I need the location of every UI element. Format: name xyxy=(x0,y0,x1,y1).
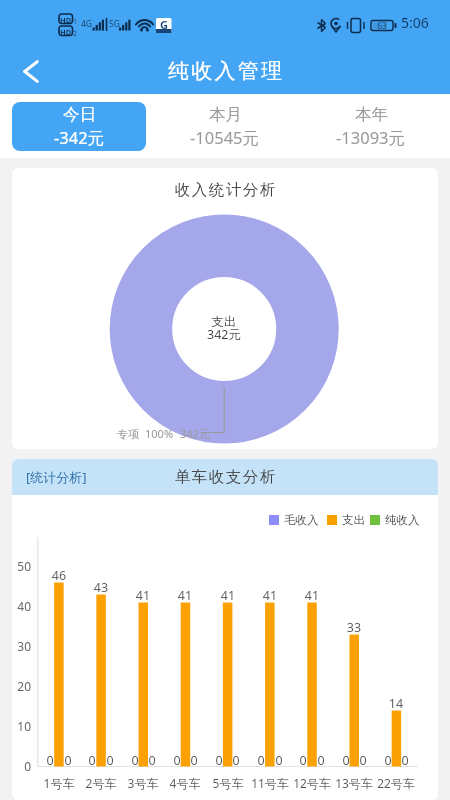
staticText: 342元 xyxy=(180,426,210,441)
staticText: -342元 xyxy=(54,126,105,149)
staticText: 0 xyxy=(85,752,135,769)
staticText: 0 xyxy=(152,752,202,769)
staticText: 33 xyxy=(329,619,379,636)
staticText: 0 xyxy=(338,752,388,769)
staticText: 10 xyxy=(12,718,31,734)
staticText: 1号车 xyxy=(29,775,89,791)
button[interactable]: 今日 xyxy=(12,102,146,151)
staticText: 0 xyxy=(110,752,160,769)
staticText: -13093元 xyxy=(336,126,406,149)
staticText: 63 xyxy=(375,20,389,32)
staticText: HD xyxy=(60,15,72,25)
staticText: 13号车 xyxy=(324,775,384,791)
staticText: 0 xyxy=(296,752,346,769)
staticText: 41 xyxy=(245,587,295,604)
staticText: 342元 xyxy=(184,326,264,343)
staticText: 12号车 xyxy=(282,775,342,791)
staticText: -10545元 xyxy=(190,126,260,149)
staticText: 46 xyxy=(34,567,84,584)
staticText: 5G xyxy=(109,18,121,30)
staticText: 本月 xyxy=(209,104,242,125)
staticText: 41 xyxy=(118,587,168,604)
staticText: 3号车 xyxy=(113,775,173,791)
staticText: 0 xyxy=(236,752,286,769)
staticText: 毛收入 xyxy=(284,513,319,527)
staticText: 5号车 xyxy=(198,775,258,791)
staticText: 40 xyxy=(12,598,31,614)
staticText: 纯收入 xyxy=(385,513,420,527)
staticText: 专项 xyxy=(117,427,139,441)
staticText: 0 xyxy=(321,752,371,769)
staticText: 50 xyxy=(12,558,31,574)
staticText: HD xyxy=(60,27,72,37)
staticText: 0 xyxy=(254,752,304,769)
staticText: 41 xyxy=(203,587,253,604)
staticText: 5:06 xyxy=(401,13,429,32)
staticText: 100% xyxy=(145,426,174,441)
staticText: 纯收入管理 xyxy=(167,58,283,84)
staticText: 4号车 xyxy=(155,775,215,791)
staticText: 11号车 xyxy=(240,775,300,791)
staticText: 单车收支分析 xyxy=(174,467,276,487)
staticText: 2 xyxy=(73,29,78,39)
staticText: 20 xyxy=(12,678,31,694)
staticText: 0 xyxy=(211,752,261,769)
staticText: 本年 xyxy=(355,104,388,125)
staticText: 0 xyxy=(380,752,430,769)
staticText: 今日 xyxy=(63,104,96,125)
staticText: 0 xyxy=(127,752,177,769)
staticText: 1 xyxy=(73,17,78,27)
button[interactable]: 本年 xyxy=(304,102,438,151)
staticText: 43 xyxy=(76,579,126,596)
button[interactable]: Back xyxy=(7,48,55,96)
staticText: 2号车 xyxy=(71,775,131,791)
staticText: 30 xyxy=(12,638,31,654)
staticText: [统计分析] xyxy=(26,468,87,486)
staticText: 0 xyxy=(25,752,75,769)
staticText: 0 xyxy=(169,752,219,769)
staticText: 0 xyxy=(12,758,31,774)
staticText: 0 xyxy=(278,752,328,769)
staticText: 0 xyxy=(67,752,117,769)
staticText: 支出 xyxy=(184,314,264,330)
staticText: G xyxy=(157,17,171,32)
staticText: 0 xyxy=(194,752,244,769)
staticText: 支出 xyxy=(342,513,365,527)
staticText: 0 xyxy=(43,752,93,769)
staticText: 收入统计分析 xyxy=(174,180,276,200)
staticText: 0 xyxy=(363,752,413,769)
button[interactable]: 本月 xyxy=(158,102,292,151)
staticText: 14 xyxy=(371,695,421,712)
staticText: 22号车 xyxy=(366,775,426,791)
staticText: 4G xyxy=(81,18,93,30)
staticText: 41 xyxy=(287,587,337,604)
staticText: 41 xyxy=(160,587,210,604)
